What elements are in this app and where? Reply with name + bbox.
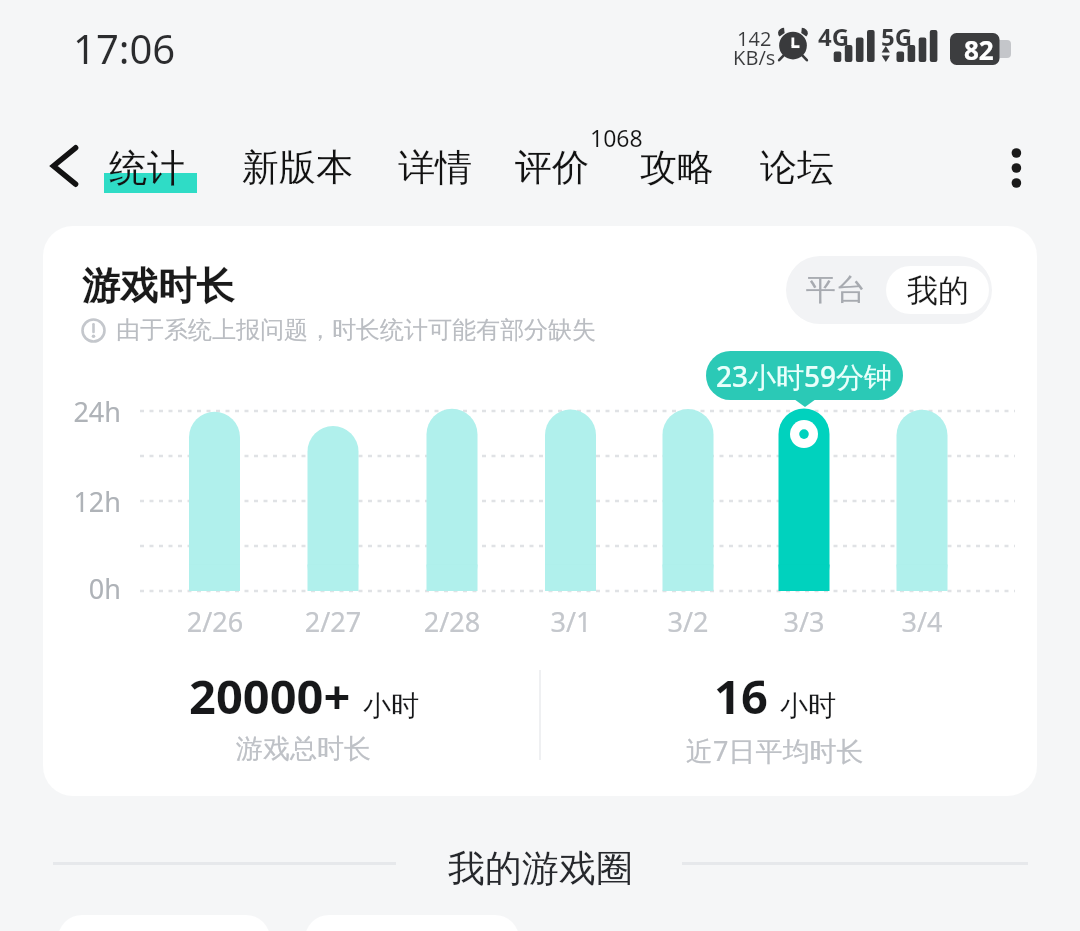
- button[interactable]: 新版本: [233, 134, 362, 201]
- staticText: 平台: [806, 271, 866, 309]
- staticText: 2/28: [392, 603, 512, 640]
- staticText: 统计: [109, 144, 185, 192]
- button[interactable]: 详情: [389, 134, 481, 201]
- staticText: 我的游戏圈: [448, 845, 633, 892]
- staticText: 详情: [398, 144, 472, 191]
- staticText: 16: [714, 664, 768, 728]
- button[interactable]: 论坛: [751, 134, 843, 201]
- staticText: 小时: [363, 688, 419, 723]
- staticText: 20000+: [189, 664, 351, 728]
- staticText: 游戏总时长: [236, 732, 371, 766]
- staticText: 我的: [907, 271, 969, 310]
- staticText: 2/26: [155, 603, 275, 640]
- staticText: 142: [737, 25, 772, 52]
- staticText: 12h: [43, 483, 121, 520]
- staticText: 3/2: [628, 603, 748, 640]
- staticText: 24h: [43, 393, 121, 430]
- staticText: 小时: [780, 688, 836, 723]
- staticText: 3/4: [862, 603, 982, 640]
- staticText: KB/s: [733, 44, 776, 71]
- staticText: 4G: [818, 20, 850, 53]
- staticText: 0h: [43, 570, 121, 607]
- staticText: 82: [964, 32, 994, 64]
- staticText: 攻略: [640, 144, 714, 191]
- button[interactable]: 评价: [506, 134, 651, 201]
- button[interactable]: 统计: [100, 134, 194, 202]
- staticText: 3/3: [744, 603, 864, 640]
- staticText: 2/27: [273, 603, 393, 640]
- button[interactable]: 攻略: [631, 134, 723, 201]
- staticText: 17:06: [73, 21, 176, 75]
- staticText: 3/1: [511, 603, 631, 640]
- staticText: 5G: [881, 20, 913, 53]
- button[interactable]: More options: [987, 135, 1047, 195]
- staticText: 游戏时长: [82, 262, 234, 310]
- staticText: 论坛: [760, 144, 834, 191]
- staticText: 近7日平均时长: [686, 732, 864, 769]
- staticText: 评价: [515, 144, 589, 191]
- staticText: 1068: [590, 122, 643, 153]
- staticText: 由于系统上报问题，时长统计可能有部分缺失: [116, 315, 596, 345]
- button[interactable]: 我的: [886, 266, 989, 314]
- button[interactable]: 平台: [786, 256, 886, 324]
- staticText: 23小时59分钟: [716, 357, 893, 395]
- button[interactable]: Back: [34, 134, 98, 198]
- staticText: 新版本: [242, 144, 353, 191]
